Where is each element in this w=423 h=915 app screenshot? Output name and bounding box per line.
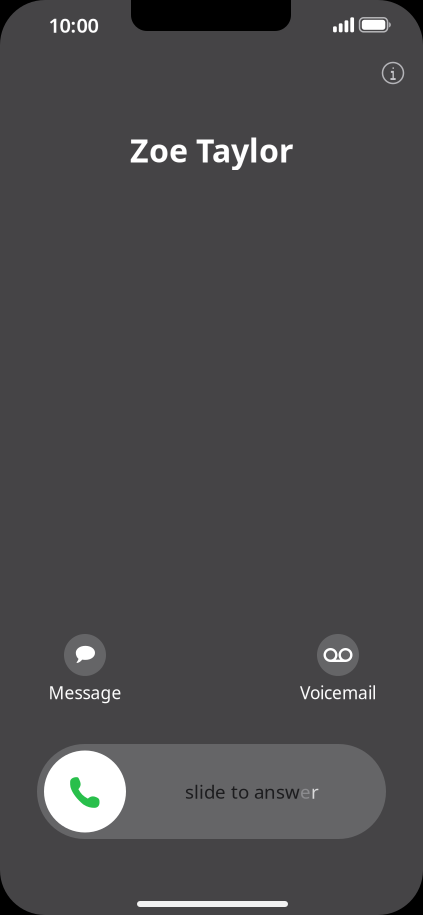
staticText: e — [300, 779, 311, 804]
button[interactable]: Voicemail — [278, 634, 398, 704]
button[interactable]: Message — [25, 634, 145, 704]
staticText: Zoe Taylor — [130, 129, 293, 171]
staticText: slide to answ — [185, 779, 300, 804]
staticText: 10:00 — [48, 12, 98, 38]
button[interactable]: Call info — [371, 51, 415, 95]
button[interactable]: Slide to answer — [37, 744, 386, 839]
staticText: Message — [48, 681, 121, 704]
staticText: Voicemail — [300, 681, 376, 704]
staticText: r — [311, 779, 319, 804]
